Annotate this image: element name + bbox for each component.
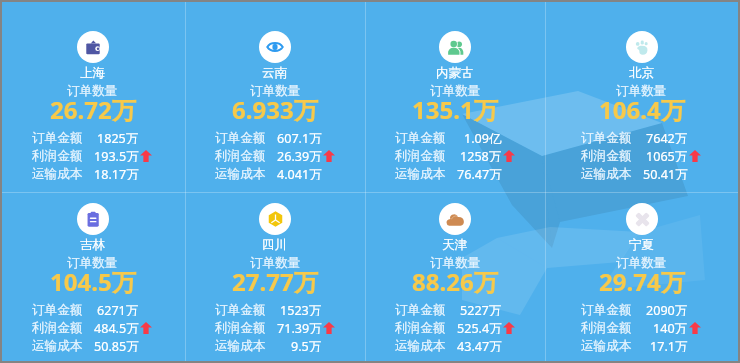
button[interactable]: 上海 [0,0,185,192]
staticText: 484.5万 [94,320,139,334]
button[interactable]: 内蒙古 [365,0,545,192]
staticText: 106.4万 [599,93,685,126]
staticText: 订单数量 [616,255,667,271]
staticText: 利润金额 [32,320,83,334]
staticText: 5227万 [460,302,502,316]
staticText: 利润金额 [581,320,632,334]
staticText: 利润金额 [395,320,446,334]
staticText: 利润金额 [215,320,266,334]
staticText: 订单数量 [430,83,481,99]
staticText: 订单金额 [395,302,446,316]
staticText: 运输成本 [215,338,266,352]
staticText: 50.85万 [94,338,139,352]
staticText: 订单数量 [250,83,301,99]
staticText: 运输成本 [215,166,266,180]
staticText: 运输成本 [395,166,446,180]
staticText: 6.933万 [232,93,318,126]
staticText: 四川 [262,237,288,253]
staticText: 订单金额 [581,130,632,144]
staticText: 17.1万 [650,338,688,352]
staticText: 订单金额 [32,130,83,144]
staticText: 607.1万 [277,130,322,144]
staticText: 北京 [629,65,655,81]
button[interactable]: 四川 [185,192,365,363]
staticText: 订单数量 [67,255,118,271]
staticText: 订单数量 [616,83,667,99]
button[interactable]: 北京 [545,0,738,192]
staticText: 104.5万 [50,265,136,298]
staticText: 利润金额 [395,148,446,162]
button[interactable]: 天津 [365,192,545,363]
staticText: 71.39万 [277,320,322,334]
staticText: 宁夏 [629,237,655,253]
staticText: 1825万 [97,130,139,144]
staticText: 订单金额 [581,302,632,316]
staticText: 525.4万 [457,320,502,334]
staticText: 利润金额 [32,148,83,162]
staticText: 76.47万 [457,166,502,180]
staticText: 1523万 [280,302,322,316]
button[interactable]: 云南 [185,0,365,192]
staticText: 18.17万 [94,166,139,180]
staticText: 4.041万 [277,166,322,180]
staticText: 运输成本 [32,166,83,180]
staticText: 26.72万 [50,93,136,126]
staticText: 运输成本 [581,166,632,180]
staticText: 140万 [653,320,688,334]
staticText: 利润金额 [581,148,632,162]
staticText: 26.39万 [277,148,322,162]
staticText: 7642万 [646,130,688,144]
staticText: 订单金额 [32,302,83,316]
staticText: 订单数量 [430,255,481,271]
staticText: 订单金额 [395,130,446,144]
staticText: 135.1万 [412,93,498,126]
staticText: 订单金额 [215,302,266,316]
staticText: 运输成本 [32,338,83,352]
staticText: 29.74万 [599,265,685,298]
staticText: 88.26万 [412,265,498,298]
staticText: 运输成本 [581,338,632,352]
staticText: 9.5万 [291,338,322,352]
staticText: 运输成本 [395,338,446,352]
button[interactable]: 宁夏 [545,192,738,363]
staticText: 193.5万 [94,148,139,162]
staticText: 1065万 [646,148,688,162]
staticText: 1258万 [460,148,502,162]
staticText: 2090万 [646,302,688,316]
staticText: 订单数量 [67,83,118,99]
staticText: 27.77万 [232,265,318,298]
staticText: 订单数量 [250,255,301,271]
staticText: 内蒙古 [436,65,474,81]
staticText: 50.41万 [643,166,688,180]
staticText: 上海 [80,65,106,81]
staticText: 43.47万 [457,338,502,352]
staticText: 云南 [262,65,288,81]
staticText: 利润金额 [215,148,266,162]
button[interactable]: 吉林 [0,192,185,363]
staticText: 1.09亿 [464,130,502,144]
staticText: 天津 [442,237,468,253]
staticText: 订单金额 [215,130,266,144]
staticText: 吉林 [80,237,106,253]
staticText: 6271万 [97,302,139,316]
